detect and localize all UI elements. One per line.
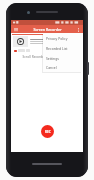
staticText: Scroll Recorder (11, 55, 57, 59)
button[interactable]: Privacy Policy (43, 33, 82, 43)
staticText: Settings (46, 56, 59, 61)
button[interactable]: Settings (43, 53, 82, 63)
button[interactable]: More options (76, 26, 81, 33)
staticText: Recorded List (46, 46, 68, 51)
button[interactable]: Recorded List (43, 43, 82, 53)
staticText: Cancel (46, 65, 57, 70)
button[interactable]: Cancel (43, 63, 82, 72)
staticText: Screen Recorder (33, 27, 62, 32)
button[interactable]: Open navigation menu (13, 26, 19, 32)
staticText: Privacy Policy (46, 36, 68, 41)
button[interactable]: Record (41, 125, 54, 138)
button[interactable] (12, 34, 61, 52)
staticText: REC (45, 130, 51, 134)
